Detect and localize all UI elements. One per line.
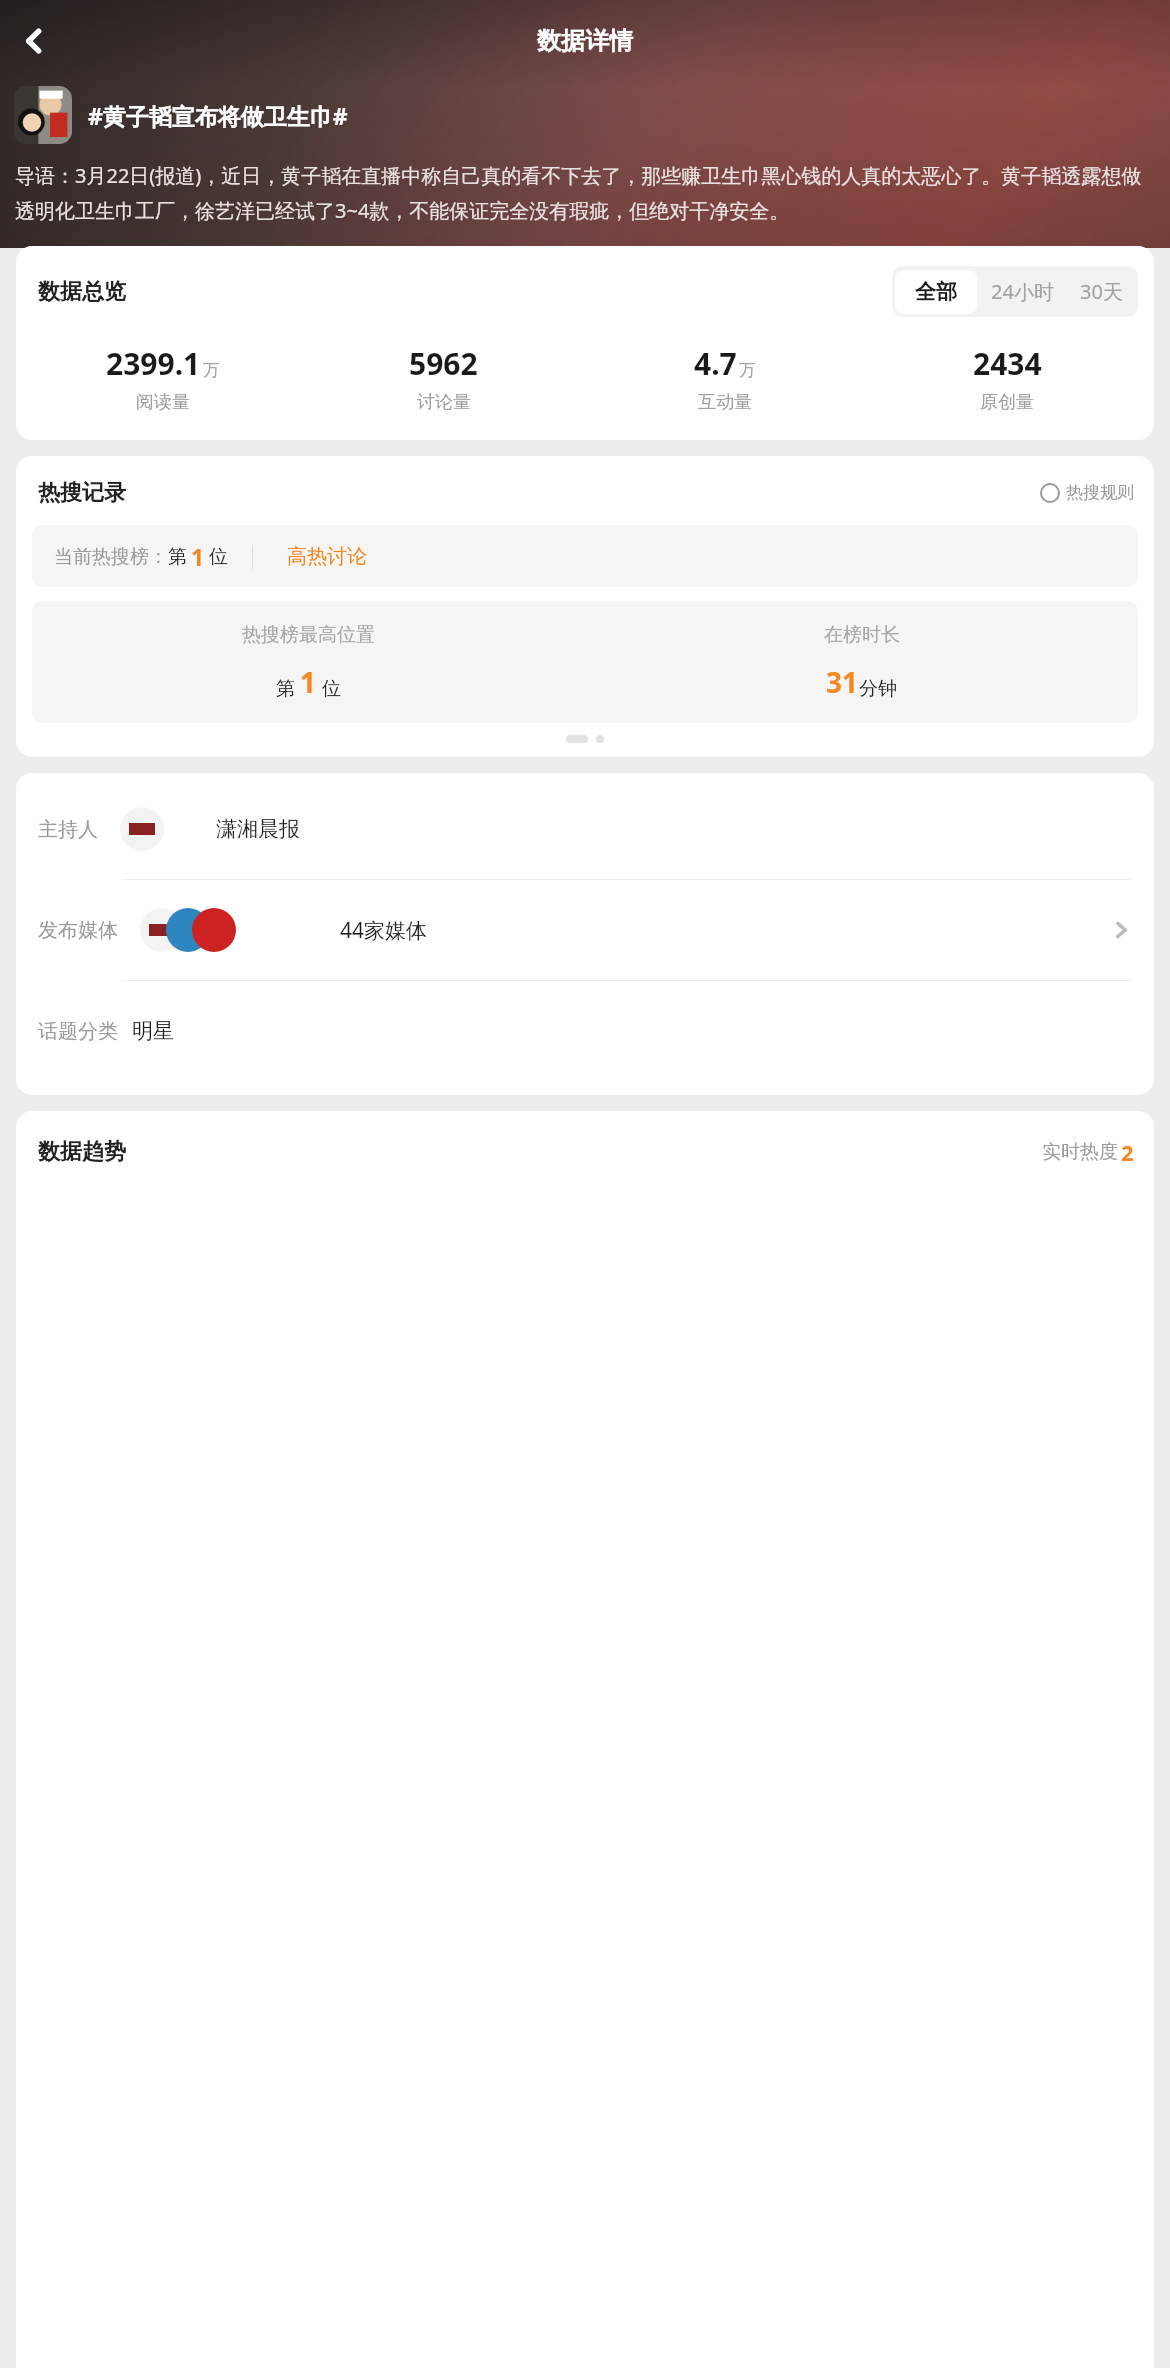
staticText: 互动量: [698, 391, 752, 414]
staticText: 2: [1121, 1137, 1134, 1167]
staticText: 位: [209, 545, 228, 569]
button[interactable]: 发布媒体: [16, 880, 1154, 980]
staticText: 热搜规则: [1066, 482, 1134, 503]
staticText: 明星: [132, 1018, 174, 1044]
button[interactable]: 4.7: [584, 343, 866, 414]
staticText: 潇湘晨报: [216, 816, 300, 842]
staticText: 4.7: [694, 343, 737, 384]
staticText: 5962: [409, 343, 478, 384]
staticText: 位: [322, 677, 341, 701]
button[interactable]: 热搜榜最高位置: [32, 601, 1138, 723]
staticText: 在榜时长: [824, 623, 900, 647]
staticText: 2434: [973, 343, 1042, 384]
button[interactable]: 2399.1: [22, 343, 303, 414]
button[interactable]: 全部: [895, 270, 977, 314]
button[interactable]: 主持人: [16, 779, 1154, 879]
button[interactable]: 当前热搜榜：: [32, 525, 1138, 587]
staticText: 热搜记录: [38, 479, 126, 507]
staticText: 24小时: [991, 278, 1054, 305]
staticText: 高热讨论: [287, 544, 367, 569]
staticText: 阅读量: [136, 391, 190, 414]
staticText: 1: [191, 541, 205, 572]
staticText: 讨论量: [417, 391, 471, 414]
staticText: 44家媒体: [340, 916, 428, 945]
staticText: 第: [276, 677, 295, 701]
button[interactable]: 2434: [866, 343, 1148, 414]
button[interactable]: Back: [6, 13, 62, 69]
button[interactable]: 话题分类: [16, 981, 1154, 1081]
staticText: 万: [739, 360, 756, 381]
staticText: 第: [168, 545, 187, 569]
button[interactable]: 24小时: [977, 269, 1068, 314]
staticText: 原创量: [980, 391, 1034, 414]
staticText: 实时热度: [1042, 1140, 1118, 1164]
staticText: 分钟: [859, 677, 897, 701]
staticText: 数据详情: [537, 26, 633, 56]
staticText: 主持人: [38, 817, 98, 842]
staticText: 数据总览: [38, 278, 126, 306]
staticText: 当前热搜榜：: [54, 545, 168, 569]
button[interactable]: 5962: [303, 343, 584, 414]
staticText: 30天: [1080, 278, 1123, 305]
staticText: 热搜榜最高位置: [242, 623, 375, 647]
staticText: 数据趋势: [38, 1138, 126, 1166]
staticText: 万: [203, 360, 220, 381]
staticText: 发布媒体: [38, 918, 118, 943]
staticText: 全部: [915, 279, 957, 305]
staticText: 31: [826, 663, 859, 701]
staticText: #黄子韬宣布将做卫生巾#: [88, 100, 1154, 131]
button[interactable]: 热搜规则: [1038, 478, 1136, 507]
button[interactable]: 30天: [1068, 269, 1135, 314]
staticText: 话题分类: [38, 1019, 118, 1044]
staticText: 2399.1: [106, 343, 201, 384]
staticText: 导语：3月22日(报道)，近日，黄子韬在直播中称自己真的看不下去了，那些赚卫生巾…: [15, 162, 1155, 224]
staticText: 1: [300, 663, 317, 701]
